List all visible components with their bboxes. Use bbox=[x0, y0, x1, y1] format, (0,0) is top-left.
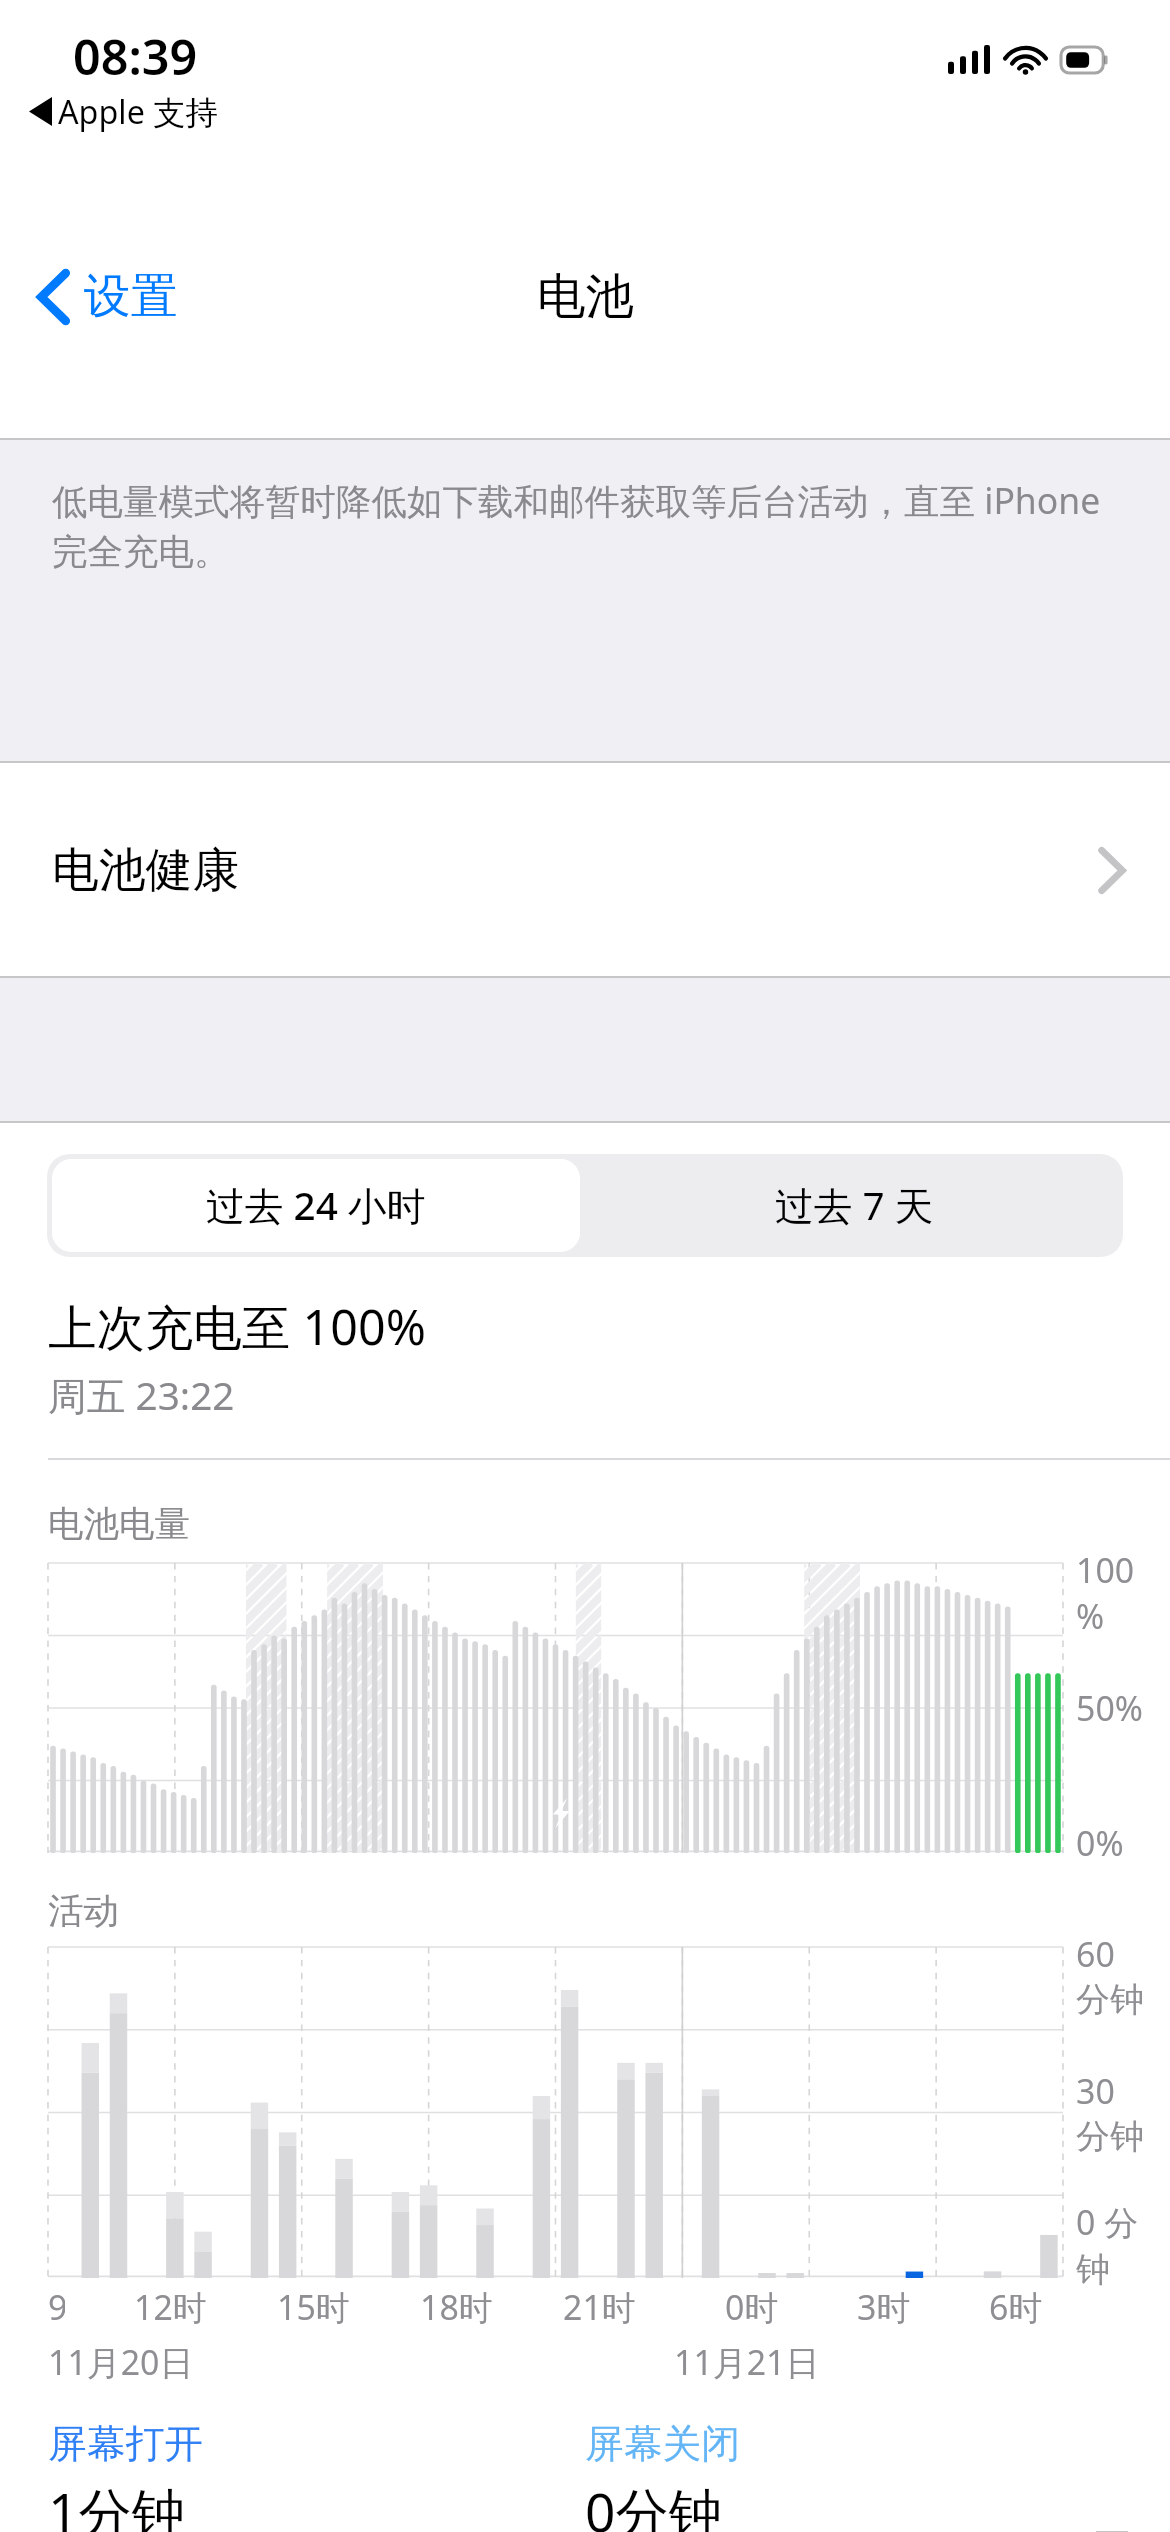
staticText: 过去 7 天 bbox=[775, 1179, 934, 1232]
staticText: 低电量模式将暂时降低如下载和邮件获取等后台活动，直至 iPhone 完全充电。 bbox=[52, 476, 1128, 575]
button[interactable]: 过去 7 天 bbox=[585, 1154, 1123, 1257]
staticText: 电池 bbox=[537, 266, 634, 327]
staticText: 电池健康 bbox=[52, 841, 240, 900]
staticText: 12时 bbox=[134, 2284, 207, 2330]
staticText: 0时 bbox=[725, 2284, 779, 2330]
staticText: 屏幕打开 bbox=[48, 2420, 203, 2469]
staticText: 屏幕关闭 bbox=[585, 2420, 740, 2469]
button[interactable]: 过去 24 小时 bbox=[52, 1159, 580, 1252]
staticText: 100% bbox=[1076, 1547, 1147, 1639]
staticText: 18时 bbox=[420, 2284, 493, 2330]
button[interactable]: 设置 bbox=[29, 254, 188, 339]
button[interactable]: 电池健康 bbox=[0, 763, 1170, 978]
staticText: Apple 支持 bbox=[58, 89, 218, 133]
staticText: 电池电量 bbox=[48, 1502, 190, 1547]
staticText: 1分钟 bbox=[48, 2475, 185, 2532]
staticText: 21时 bbox=[563, 2284, 636, 2330]
staticText: 50% bbox=[1076, 1685, 1143, 1731]
staticText: 0分钟 bbox=[585, 2475, 722, 2532]
staticText: 3时 bbox=[857, 2284, 911, 2330]
staticText: 上次充电至 100% bbox=[48, 1293, 426, 1359]
staticText: 9时 bbox=[48, 2284, 65, 2339]
staticText: 0 分钟 bbox=[1076, 2199, 1147, 2291]
staticText: 15时 bbox=[277, 2284, 350, 2330]
staticText: 11月21日 bbox=[674, 2339, 820, 2385]
staticText: 08:39 bbox=[73, 23, 198, 89]
staticText: 60 分钟 bbox=[1076, 1931, 1147, 2021]
staticText: 设置 bbox=[84, 267, 178, 326]
staticText: 6时 bbox=[989, 2284, 1043, 2330]
staticText: 周五 23:22 bbox=[48, 1369, 235, 1422]
staticText: 活动 bbox=[48, 1889, 119, 1934]
staticText: 30 分钟 bbox=[1076, 2068, 1147, 2158]
staticText: 过去 24 小时 bbox=[206, 1179, 426, 1232]
staticText: 0% bbox=[1076, 1820, 1124, 1866]
staticText: 11月20日 bbox=[48, 2339, 194, 2385]
